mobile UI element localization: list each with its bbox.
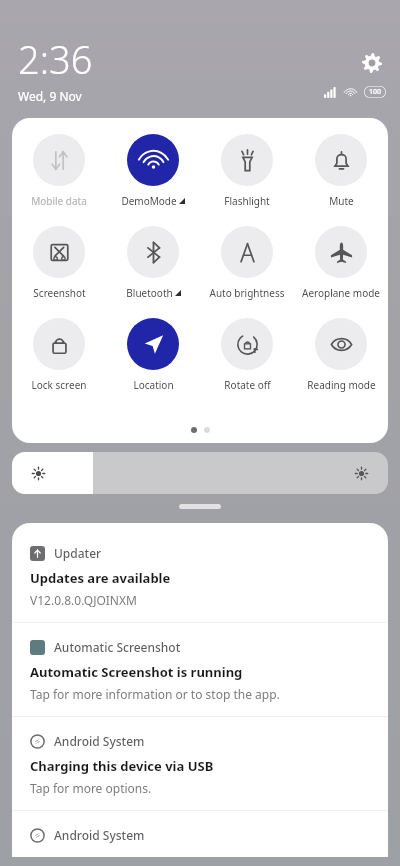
- button[interactable]: Reading mode: [294, 318, 388, 392]
- button[interactable]: Automatic Screenshot: [12, 623, 388, 716]
- button[interactable]: Location: [106, 318, 200, 392]
- button[interactable]: Aeroplane mode: [294, 226, 388, 300]
- button[interactable]: Android System: [12, 717, 388, 810]
- button[interactable]: Flashlight: [200, 134, 294, 208]
- button[interactable]: Android System: [12, 811, 388, 857]
- staticText: 2:36: [18, 33, 93, 85]
- staticText: Location: [133, 378, 174, 392]
- staticText: Updater: [54, 545, 102, 561]
- button[interactable]: Lock screen: [12, 318, 106, 392]
- staticText: Screenshot: [33, 286, 86, 300]
- staticText: 100: [369, 87, 382, 97]
- staticText: Charging this device via USB: [30, 757, 214, 775]
- staticText: Android System: [54, 733, 145, 749]
- staticText: Tap for more information or to stop the …: [30, 686, 280, 702]
- button[interactable]: Settings: [357, 48, 387, 78]
- button[interactable]: Auto brightness: [200, 226, 294, 300]
- staticText: Tap for more options.: [30, 780, 152, 796]
- staticText: DemoMode: [121, 194, 177, 208]
- staticText: Aeroplane mode: [302, 286, 380, 300]
- staticText: Automatic Screenshot: [54, 639, 181, 655]
- staticText: Bluetooth: [126, 286, 173, 300]
- staticText: Mobile data: [31, 194, 87, 208]
- staticText: Mute: [329, 194, 354, 208]
- button[interactable]: Mobile data: [12, 134, 106, 208]
- staticText: Lock screen: [31, 378, 87, 392]
- button[interactable]: Bluetooth: [106, 226, 200, 300]
- staticText: Android System: [54, 827, 145, 843]
- staticText: Wed, 9 Nov: [18, 88, 82, 104]
- staticText: V12.0.8.0.QJOINXM: [30, 592, 137, 608]
- staticText: Reading mode: [307, 378, 376, 392]
- button[interactable]: Updater: [12, 523, 388, 622]
- button[interactable]: DemoMode: [106, 134, 200, 208]
- button[interactable]: Screenshot: [12, 226, 106, 300]
- button[interactable]: Rotate off: [200, 318, 294, 392]
- button[interactable]: Expand: [179, 504, 221, 509]
- button[interactable]: Mute: [294, 134, 388, 208]
- staticText: Updates are available: [30, 569, 171, 587]
- staticText: Flashlight: [224, 194, 270, 208]
- staticText: Automatic Screenshot is running: [30, 663, 243, 681]
- button[interactable]: Brightness: [12, 452, 388, 494]
- staticText: Rotate off: [224, 378, 271, 392]
- staticText: Auto brightness: [209, 286, 285, 300]
